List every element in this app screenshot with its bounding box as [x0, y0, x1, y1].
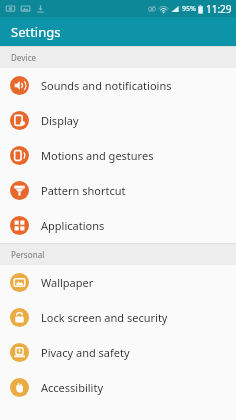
button[interactable]: Pivacy and safety: [0, 335, 236, 370]
staticText: Pivacy and safety: [41, 345, 130, 360]
staticText: Pattern shortcut: [41, 183, 126, 198]
button[interactable]: Display: [0, 103, 236, 138]
staticText: Personal: [11, 249, 45, 260]
staticText: Wallpaper: [41, 275, 94, 290]
staticText: Lock screen and security: [41, 310, 168, 325]
staticText: Device: [11, 52, 37, 63]
button[interactable]: Pattern shortcut: [0, 173, 236, 208]
staticText: Settings: [11, 23, 61, 41]
button[interactable]: Motions and gestures: [0, 138, 236, 173]
staticText: Motions and gestures: [41, 148, 154, 163]
button[interactable]: Wallpaper: [0, 265, 236, 300]
staticText: Applications: [41, 218, 105, 233]
button[interactable]: Sounds and notificatioins: [0, 68, 236, 103]
staticText: 11:29: [206, 2, 232, 16]
button[interactable]: Accessibility: [0, 370, 236, 405]
staticText: Display: [41, 113, 79, 128]
button[interactable]: Lock screen and security: [0, 300, 236, 335]
staticText: Sounds and notificatioins: [41, 78, 172, 93]
button[interactable]: Applications: [0, 208, 236, 243]
staticText: Accessibility: [41, 380, 104, 395]
staticText: 95%: [182, 4, 196, 14]
